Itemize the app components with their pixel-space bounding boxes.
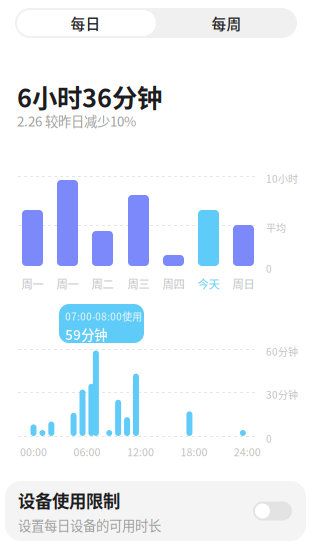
staticText: 2.26 较昨日减少10% xyxy=(17,111,136,130)
staticText: 平均 xyxy=(266,220,286,235)
staticText: 周四 xyxy=(162,275,184,292)
button[interactable]: 每周 xyxy=(156,8,297,38)
staticText: 0 xyxy=(266,431,272,446)
staticText: 周二 xyxy=(91,275,113,292)
staticText: 07:00-08:00使用 xyxy=(65,309,142,323)
staticText: 设置每日设备的可用时长 xyxy=(18,515,161,535)
staticText: 06:00 xyxy=(73,444,100,459)
staticText: 周日 xyxy=(232,275,254,292)
staticText: 12:00 xyxy=(127,444,154,459)
staticText: 今天 xyxy=(197,275,219,292)
button[interactable]: 设备使用限制 xyxy=(5,481,306,541)
staticText: 00:00 xyxy=(20,444,47,459)
staticText: 周三 xyxy=(127,275,149,292)
staticText: 0 xyxy=(266,261,272,276)
button[interactable]: 每日 xyxy=(15,8,156,38)
staticText: 59分钟 xyxy=(65,324,107,344)
staticText: 设备使用限制 xyxy=(18,487,120,512)
staticText: 周一 xyxy=(21,275,43,292)
staticText: 每日 xyxy=(70,12,100,34)
staticText: 周一 xyxy=(56,275,78,292)
staticText: 每周 xyxy=(211,12,241,34)
staticText: 6小时36分钟 xyxy=(17,78,162,115)
staticText: 10小时 xyxy=(266,171,298,186)
staticText: 18:00 xyxy=(180,444,207,459)
staticText: 30分钟 xyxy=(266,387,298,402)
staticText: 60分钟 xyxy=(266,344,298,359)
staticText: 24:00 xyxy=(234,444,261,459)
